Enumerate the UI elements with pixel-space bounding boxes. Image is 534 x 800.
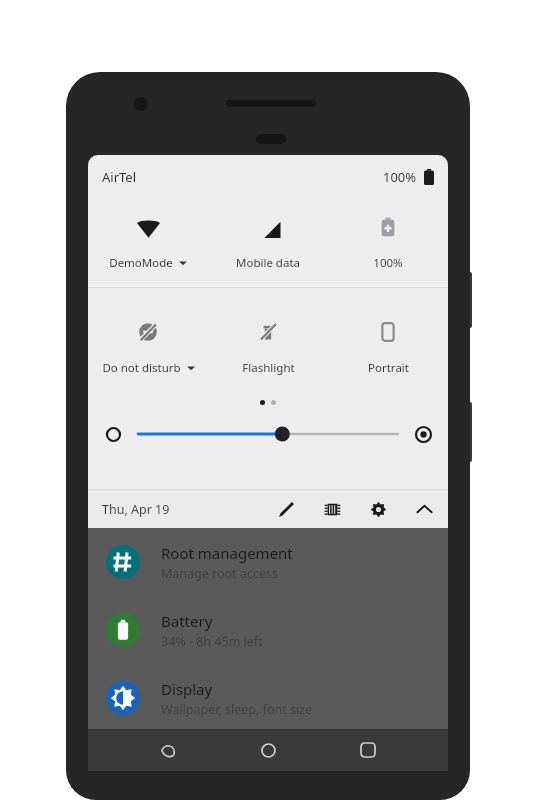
staticText: Root management — [161, 543, 293, 563]
button[interactable]: Sound — [88, 732, 448, 771]
button[interactable]: Recents — [348, 730, 388, 770]
button[interactable]: Edit — [274, 497, 298, 521]
button[interactable] — [138, 423, 398, 445]
button[interactable]: Device info — [320, 497, 344, 521]
button[interactable]: Mobile data — [208, 199, 328, 287]
button[interactable]: Battery — [88, 596, 448, 664]
staticText: 100% — [383, 168, 417, 186]
button[interactable]: Low brightness — [102, 423, 124, 445]
button[interactable]: Settings — [366, 497, 390, 521]
button[interactable]: Portrait — [328, 304, 448, 392]
button[interactable]: Auto brightness — [412, 423, 434, 445]
staticText: AirTel — [102, 168, 137, 186]
staticText: Wallpaper, sleep, font size — [161, 701, 313, 718]
staticText: DemoMode — [109, 255, 173, 271]
button[interactable]: Do not disturb — [88, 304, 208, 392]
staticText: Manage root access — [161, 565, 278, 582]
staticText: 100% — [373, 255, 403, 271]
button[interactable]: Collapse — [412, 497, 436, 521]
staticText: Portrait — [368, 360, 409, 376]
button[interactable]: DemoMode — [88, 199, 208, 287]
button[interactable]: Flashlight — [208, 304, 328, 392]
staticText: Flashlight — [242, 360, 295, 376]
staticText: Battery — [161, 611, 213, 631]
staticText: Do not disturb — [102, 360, 181, 376]
button[interactable]: 100% — [328, 199, 448, 287]
button[interactable]: Root management — [88, 528, 448, 596]
button[interactable]: Home — [248, 730, 288, 770]
staticText: 34% - 8h 45m left — [161, 633, 263, 650]
staticText: Thu, Apr 19 — [102, 501, 170, 518]
staticText: Sound — [161, 742, 207, 762]
button[interactable]: Display — [88, 664, 448, 732]
button[interactable]: Back — [148, 730, 188, 770]
staticText: Mobile data — [236, 255, 300, 271]
staticText: Display — [161, 679, 213, 699]
